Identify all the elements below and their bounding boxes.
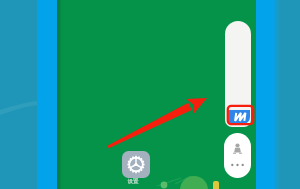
button[interactable]: WPS Office app [229, 110, 250, 124]
button[interactable]: Assistive menu [224, 133, 251, 178]
staticText: 设置 [119, 178, 147, 185]
button[interactable]: Settings [122, 151, 150, 178]
